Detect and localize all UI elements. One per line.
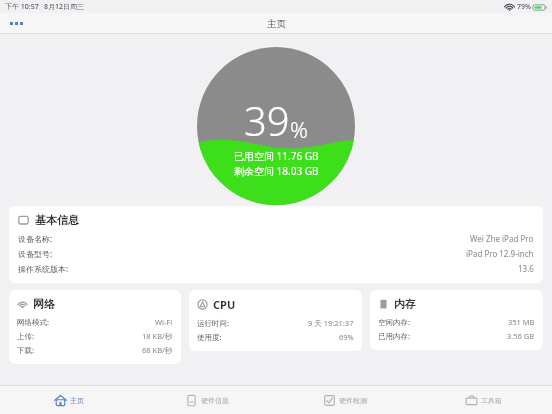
staticText: %	[290, 114, 308, 144]
staticText: Wei Zhe iPad Pro	[470, 233, 534, 244]
staticText: 网络	[33, 297, 55, 311]
staticText: 已用空间 11.76 GB	[234, 149, 319, 163]
staticText: CPU	[213, 297, 236, 312]
staticText: 下载:	[17, 345, 35, 355]
button[interactable]: 网络	[9, 290, 181, 364]
staticText: 上传:	[17, 331, 35, 341]
staticText: 79%	[517, 2, 531, 12]
staticText: 网络模式:	[17, 317, 50, 327]
button[interactable]: 主页	[0, 386, 138, 414]
staticText: 13.6	[518, 263, 534, 274]
staticText: 主页	[267, 18, 286, 30]
button[interactable]: 内存	[370, 290, 543, 350]
button[interactable]: 硬件信息	[138, 386, 276, 414]
staticText: 操作系统版本:	[18, 263, 69, 274]
staticText: 3.56 GB	[507, 331, 535, 341]
staticText: 硬件信息	[201, 396, 229, 405]
button[interactable]: 工具箱	[414, 386, 552, 414]
staticText: 运行时间:	[197, 318, 230, 328]
staticText: 8月12日周三	[44, 2, 85, 12]
staticText: 工具箱	[481, 396, 502, 405]
staticText: 硬件检测	[339, 396, 367, 405]
staticText: 内存	[394, 297, 416, 311]
button[interactable]: CPU	[189, 290, 362, 351]
staticText: 空闲内存:	[378, 317, 411, 327]
staticText: Wi-Fi	[155, 317, 173, 327]
staticText: 18 KB/秒	[142, 331, 173, 341]
staticText: 剩余空间 18.03 GB	[234, 164, 319, 178]
button[interactable]: 基本信息	[9, 206, 543, 283]
button[interactable]: 硬件检测	[276, 386, 414, 414]
staticText: 9 天 19:21:37	[308, 318, 354, 328]
staticText: 39	[244, 93, 290, 147]
staticText: 设备名称:	[18, 233, 53, 244]
staticText: 下午 10:57	[5, 2, 39, 12]
staticText: 351 MB	[508, 317, 535, 327]
staticText: 68 KB/秒	[142, 345, 173, 355]
staticText: 主页	[70, 396, 84, 405]
staticText: 基本信息	[35, 213, 79, 227]
staticText: 设备型号:	[18, 248, 53, 259]
button[interactable]: 菜单	[8, 18, 25, 29]
staticText: iPad Pro 12.9-inch	[466, 248, 534, 259]
staticText: 已用内存:	[378, 331, 411, 341]
staticText: 69%	[339, 332, 354, 342]
staticText: 使用度:	[197, 332, 222, 342]
